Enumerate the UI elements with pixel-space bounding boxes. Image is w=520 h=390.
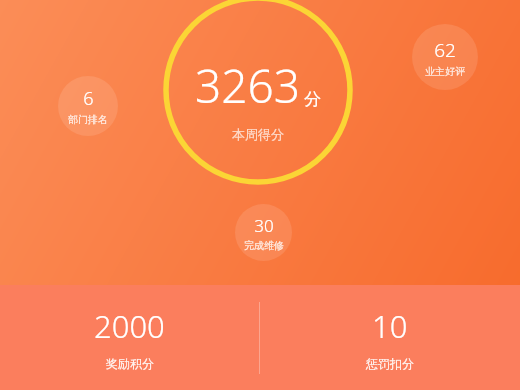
staticText: 本周得分	[232, 126, 284, 142]
staticText: 62	[434, 37, 456, 63]
button[interactable]: 完成维修 30	[235, 204, 292, 261]
staticText: 部门排名	[68, 113, 108, 126]
staticText: 分	[304, 89, 321, 110]
staticText: 3263	[195, 54, 301, 117]
staticText: 2000	[94, 305, 165, 347]
staticText: 6	[83, 86, 94, 111]
button[interactable]: 惩罚扣分 10	[260, 285, 520, 390]
staticText: 奖励积分	[106, 356, 154, 371]
staticText: 30	[254, 214, 274, 237]
button[interactable]: 3263	[158, 54, 358, 149]
button[interactable]: 奖励积分 2000	[0, 285, 259, 390]
staticText: 10	[372, 305, 408, 347]
button[interactable]: 部门排名 6	[58, 76, 118, 136]
staticText: 惩罚扣分	[366, 356, 414, 371]
button[interactable]: 业主好评 62	[412, 24, 478, 90]
staticText: 完成维修	[244, 239, 284, 252]
staticText: 业主好评	[425, 65, 465, 78]
